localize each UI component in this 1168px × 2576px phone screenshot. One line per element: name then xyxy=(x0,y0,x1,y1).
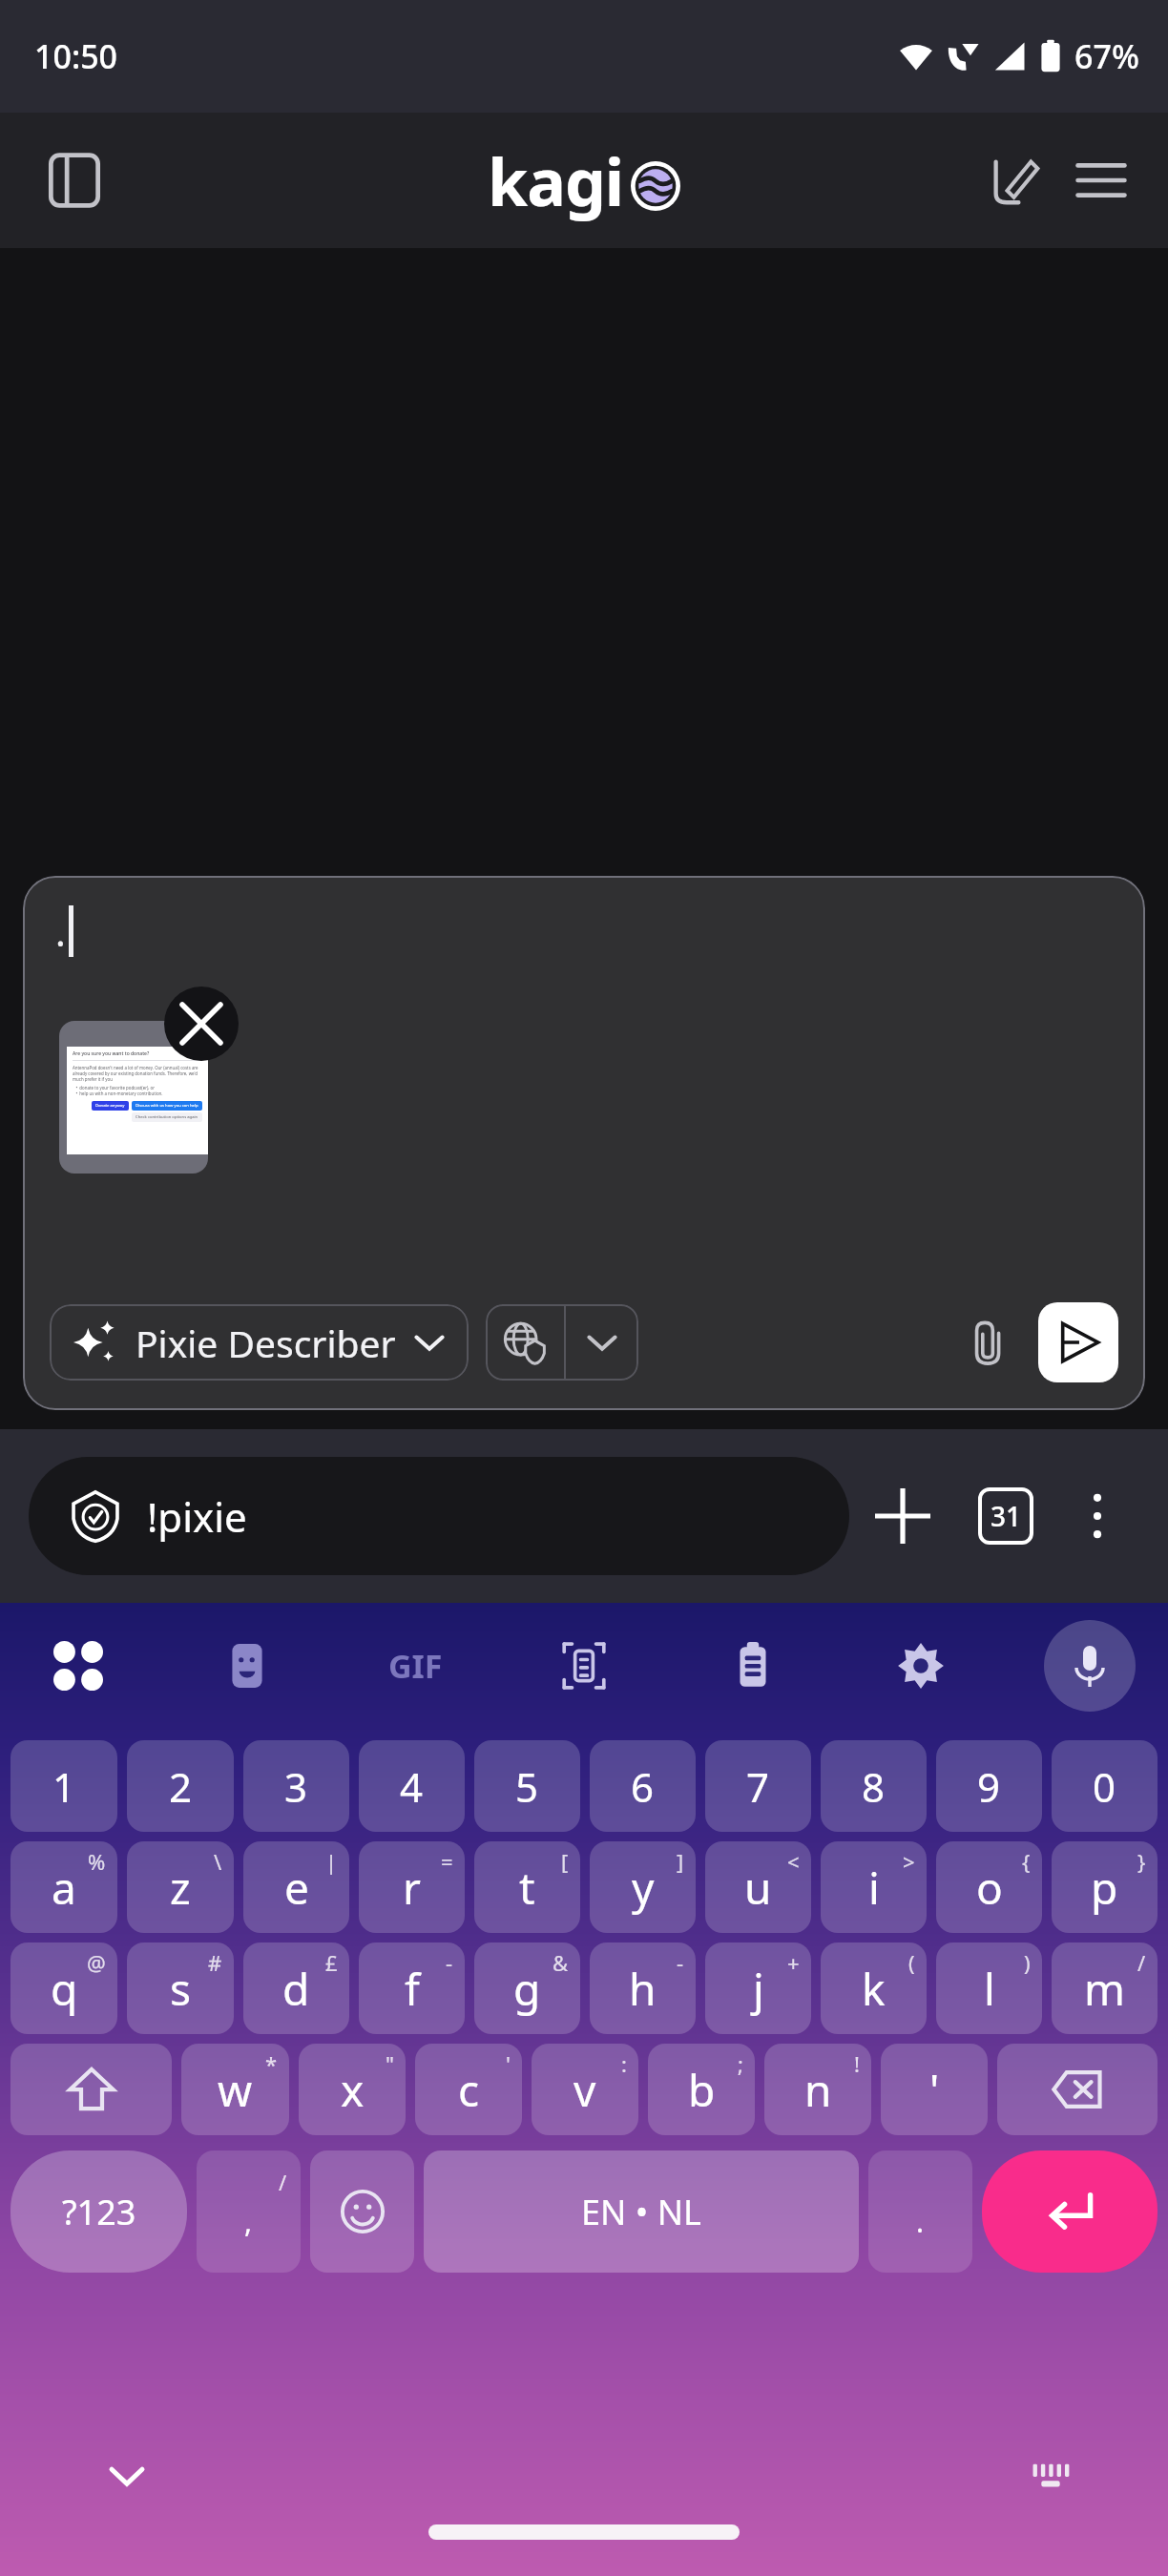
button[interactable]: Change keyboard xyxy=(1010,2435,1092,2517)
button[interactable]: More search options xyxy=(566,1304,638,1381)
button[interactable]: 1 xyxy=(10,1740,117,1832)
button[interactable]: Send xyxy=(1038,1302,1118,1382)
staticText: v xyxy=(574,2060,596,2120)
button[interactable]: c xyxy=(415,2044,522,2135)
button[interactable]: 6 xyxy=(590,1740,696,1832)
staticText: l xyxy=(984,1959,995,2019)
staticText: - xyxy=(677,1948,684,1977)
button[interactable]: f xyxy=(359,1942,465,2034)
button[interactable]: q xyxy=(10,1942,117,2034)
button[interactable]: s xyxy=(127,1942,234,2034)
staticText: GIF xyxy=(388,1644,443,1688)
button[interactable]: m xyxy=(1052,1942,1158,2034)
staticText: 31 xyxy=(991,1498,1022,1534)
staticText: 4 xyxy=(400,1759,424,1814)
button[interactable]: Menu xyxy=(1057,136,1145,224)
button[interactable]: Keyboard switcher xyxy=(32,1620,124,1712)
button[interactable]: Attached screenshot xyxy=(59,1021,208,1174)
button[interactable]: k xyxy=(821,1942,927,2034)
button[interactable]: Attach file xyxy=(949,1301,1031,1383)
button[interactable]: x xyxy=(299,2044,406,2135)
staticText: t xyxy=(519,1858,535,1918)
staticText: / xyxy=(279,2168,287,2196)
button[interactable]: Privacy mode xyxy=(486,1304,564,1381)
staticText: ' xyxy=(506,2049,511,2078)
button[interactable]: v xyxy=(532,2044,638,2135)
staticText: o xyxy=(976,1858,1003,1918)
button[interactable]: z xyxy=(127,1841,234,1933)
staticText: * xyxy=(265,2049,278,2078)
button[interactable]: e xyxy=(243,1841,349,1933)
button[interactable]: o xyxy=(936,1841,1042,1933)
staticText: + xyxy=(787,1948,800,1977)
staticText: ! xyxy=(854,2049,860,2078)
staticText: } xyxy=(1137,1847,1146,1876)
staticText: 5 xyxy=(515,1759,539,1814)
button[interactable]: EN • NL xyxy=(424,2150,859,2273)
button[interactable]: p xyxy=(1052,1841,1158,1933)
button[interactable]: Toggle sidebar xyxy=(32,138,116,222)
button[interactable]: a xyxy=(10,1841,117,1933)
button[interactable]: Scan text xyxy=(538,1620,630,1712)
button[interactable]: g xyxy=(474,1942,580,2034)
staticText: f xyxy=(405,1959,420,2019)
button[interactable]: 7 xyxy=(705,1740,811,1832)
button[interactable]: ' xyxy=(881,2044,988,2135)
button[interactable]: h xyxy=(590,1942,696,2034)
button[interactable]: Hide keyboard xyxy=(86,2435,168,2517)
button[interactable]: . xyxy=(868,2150,972,2273)
staticText: , xyxy=(244,2202,253,2241)
button[interactable]: Settings xyxy=(875,1620,967,1712)
button[interactable]: More options xyxy=(1055,1474,1139,1558)
button[interactable]: Tabs, 31 open xyxy=(956,1466,1055,1566)
button[interactable]: 3 xyxy=(243,1740,349,1832)
staticText: \ xyxy=(214,1847,222,1876)
button[interactable]: 0 xyxy=(1052,1740,1158,1832)
staticText: ) xyxy=(1024,1948,1031,1977)
button[interactable]: GIF xyxy=(369,1620,461,1712)
button[interactable]: ?123 xyxy=(10,2150,187,2273)
staticText: m xyxy=(1084,1959,1126,2019)
staticText: Donate anyway xyxy=(95,1103,125,1109)
staticText: { xyxy=(1022,1847,1031,1876)
button[interactable]: r xyxy=(359,1841,465,1933)
button[interactable]: j xyxy=(705,1942,811,2034)
button[interactable]: Backspace xyxy=(997,2044,1158,2135)
button[interactable]: Stickers xyxy=(201,1620,293,1712)
button[interactable]: 4 xyxy=(359,1740,465,1832)
staticText: ( xyxy=(908,1948,915,1977)
button[interactable]: b xyxy=(648,2044,755,2135)
button[interactable]: 5 xyxy=(474,1740,580,1832)
staticText: £ xyxy=(325,1948,338,1977)
button[interactable]: t xyxy=(474,1841,580,1933)
staticText: 7 xyxy=(746,1759,770,1814)
button[interactable]: New tab xyxy=(849,1463,956,1569)
button[interactable]: 8 xyxy=(821,1740,927,1832)
button[interactable]: n xyxy=(764,2044,871,2135)
staticText: = xyxy=(441,1847,453,1876)
staticText: g xyxy=(513,1959,541,2019)
button[interactable]: i xyxy=(821,1841,927,1933)
staticText: k xyxy=(862,1959,886,2019)
button[interactable]: !pixie xyxy=(29,1457,849,1575)
button[interactable]: Pixie Describer xyxy=(50,1304,469,1381)
button[interactable]: w xyxy=(181,2044,289,2135)
button[interactable]: Enter xyxy=(982,2150,1158,2273)
button[interactable]: Emoji xyxy=(310,2150,414,2273)
button[interactable]: y xyxy=(590,1841,696,1933)
button[interactable]: 9 xyxy=(936,1740,1042,1832)
button[interactable]: u xyxy=(705,1841,811,1933)
button[interactable]: , xyxy=(197,2150,301,2273)
staticText: a xyxy=(52,1858,76,1918)
button[interactable]: Shift xyxy=(10,2044,172,2135)
staticText: 0 xyxy=(1093,1759,1116,1814)
button[interactable]: Voice input xyxy=(1044,1620,1136,1712)
button[interactable]: l xyxy=(936,1942,1042,2034)
staticText: 9 xyxy=(977,1759,1001,1814)
button[interactable]: Clipboard xyxy=(707,1620,799,1712)
button[interactable]: 2 xyxy=(127,1740,234,1832)
button[interactable]: d xyxy=(243,1942,349,2034)
staticText: kagi xyxy=(488,136,624,225)
button[interactable]: Remove attachment xyxy=(164,987,239,1061)
button[interactable]: New chat xyxy=(970,136,1057,224)
